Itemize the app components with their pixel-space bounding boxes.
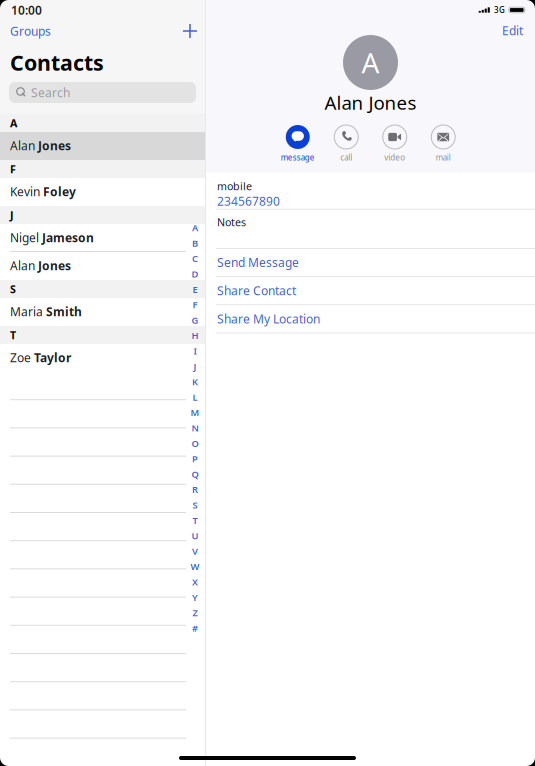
staticText: C bbox=[192, 252, 198, 265]
staticText: S bbox=[192, 499, 197, 511]
staticText: T bbox=[10, 328, 16, 342]
button[interactable]: Zoe bbox=[0, 344, 205, 372]
staticText: Smith bbox=[46, 303, 82, 319]
staticText: Notes bbox=[217, 215, 246, 229]
staticText: Alan bbox=[10, 257, 38, 273]
staticText: D bbox=[191, 268, 198, 280]
button[interactable]: Edit bbox=[497, 21, 528, 40]
staticText: Foley bbox=[43, 183, 76, 199]
staticText: H bbox=[191, 329, 198, 342]
staticText: Jameson bbox=[42, 229, 94, 245]
staticText: X bbox=[192, 576, 198, 588]
staticText: Contacts bbox=[10, 48, 104, 77]
staticText: A bbox=[361, 44, 379, 81]
staticText: Jones bbox=[38, 257, 71, 273]
staticText: J bbox=[10, 208, 14, 222]
staticText: E bbox=[192, 283, 197, 295]
staticText: N bbox=[191, 422, 198, 434]
staticText: O bbox=[191, 437, 198, 449]
staticText: S bbox=[10, 282, 16, 296]
button[interactable]: Search bbox=[9, 82, 196, 103]
staticText: Share Contact bbox=[217, 283, 296, 299]
staticText: mail bbox=[436, 152, 451, 163]
button[interactable]: Alan bbox=[0, 132, 205, 160]
staticText: T bbox=[192, 514, 197, 526]
staticText: R bbox=[192, 483, 198, 496]
staticText: M bbox=[190, 406, 199, 419]
staticText: Alan bbox=[10, 137, 38, 153]
staticText: A bbox=[10, 116, 17, 130]
button[interactable]: Add contact bbox=[179, 20, 201, 42]
staticText: Alan Jones bbox=[324, 90, 416, 115]
staticText: F bbox=[10, 162, 16, 176]
button[interactable]: mobile bbox=[206, 173, 535, 209]
staticText: P bbox=[192, 452, 198, 465]
staticText: Y bbox=[192, 591, 198, 603]
staticText: Jones bbox=[38, 137, 71, 153]
button[interactable]: video bbox=[371, 125, 418, 163]
staticText: Maria bbox=[10, 303, 46, 319]
staticText: Taylor bbox=[34, 349, 71, 365]
staticText: F bbox=[192, 298, 197, 311]
button[interactable]: Notes bbox=[206, 209, 535, 249]
staticText: message bbox=[281, 152, 315, 163]
staticText: Search bbox=[31, 84, 70, 100]
staticText: U bbox=[191, 529, 198, 542]
staticText: Edit bbox=[502, 22, 523, 38]
staticText: 234567890 bbox=[217, 193, 280, 209]
staticText: call bbox=[340, 152, 352, 163]
staticText: mobile bbox=[217, 179, 252, 193]
staticText: I bbox=[193, 345, 196, 357]
staticText: K bbox=[192, 375, 198, 388]
staticText: Nigel bbox=[10, 229, 42, 245]
button[interactable]: message bbox=[274, 125, 321, 163]
button[interactable]: Alan bbox=[0, 252, 205, 280]
staticText: 3G bbox=[494, 5, 505, 15]
staticText: G bbox=[191, 314, 198, 326]
button[interactable]: Share Contact bbox=[206, 277, 535, 305]
button[interactable]: call bbox=[322, 125, 370, 163]
staticText: B bbox=[192, 237, 198, 249]
button[interactable]: Share My Location bbox=[206, 305, 535, 333]
staticText: video bbox=[384, 152, 405, 163]
staticText: 10:00 bbox=[11, 2, 42, 18]
staticText: Q bbox=[191, 468, 198, 480]
staticText: Zoe bbox=[10, 349, 34, 365]
button[interactable]: Nigel bbox=[0, 224, 205, 252]
staticText: V bbox=[192, 545, 198, 557]
staticText: Send Message bbox=[217, 254, 299, 270]
button[interactable]: Kevin bbox=[0, 178, 205, 206]
staticText: Share My Location bbox=[217, 311, 320, 327]
staticText: Kevin bbox=[10, 183, 43, 199]
button[interactable]: Groups bbox=[10, 20, 51, 41]
button[interactable]: Send Message bbox=[206, 249, 535, 277]
staticText: L bbox=[192, 391, 197, 403]
staticText: # bbox=[192, 622, 198, 634]
staticText: A bbox=[192, 221, 198, 234]
staticText: Groups bbox=[10, 23, 51, 39]
staticText: J bbox=[193, 360, 196, 372]
staticText: W bbox=[190, 560, 199, 573]
staticText: Z bbox=[192, 606, 197, 619]
button[interactable]: mail bbox=[419, 125, 467, 163]
button[interactable]: Maria bbox=[0, 298, 205, 326]
